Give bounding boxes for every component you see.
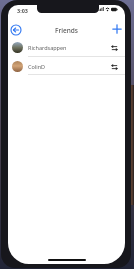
staticText: Friends (8, 26, 125, 35)
button[interactable]: Richardsappen (8, 38, 125, 57)
button[interactable] (9, 23, 23, 37)
button[interactable] (110, 22, 124, 36)
button[interactable] (108, 61, 120, 73)
staticText: Richardsappen (28, 44, 67, 51)
staticText: 3:03 (17, 7, 28, 14)
staticText: ColinD (28, 63, 46, 70)
button[interactable] (108, 42, 120, 54)
button[interactable]: ColinD (8, 57, 125, 76)
